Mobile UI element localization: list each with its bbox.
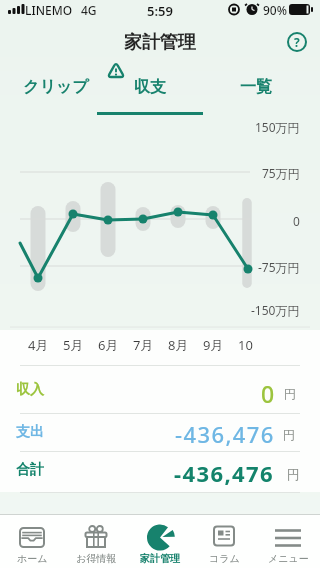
staticText: 0	[293, 213, 300, 228]
staticText: 4月	[28, 336, 49, 353]
staticText: ホーム	[17, 552, 48, 565]
staticText: メニュー	[268, 552, 309, 565]
staticText: 75万円	[262, 165, 300, 180]
staticText: LINEMO	[25, 2, 73, 18]
staticText: 8月	[168, 336, 189, 353]
button[interactable]: お得情報	[64, 515, 128, 568]
staticText: 家計管理	[124, 31, 196, 53]
staticText: 5:59	[147, 2, 173, 18]
staticText: 5月	[63, 336, 84, 353]
staticText: 家計管理	[140, 552, 180, 565]
staticText: 90%	[263, 2, 287, 18]
button[interactable]	[0, 366, 320, 413]
staticText: -150万円	[251, 302, 300, 317]
button[interactable]	[0, 452, 320, 492]
staticText: 支出	[16, 423, 44, 441]
button[interactable]: ホーム	[0, 515, 64, 568]
staticText: 0	[261, 378, 275, 406]
staticText: 合計	[16, 461, 44, 479]
staticText: 4G	[81, 2, 97, 18]
staticText: クリップ	[23, 77, 89, 97]
staticText: -75万円	[258, 259, 300, 274]
staticText: -436,476	[174, 458, 275, 486]
button[interactable]: ?	[286, 31, 308, 53]
staticText: コラム	[209, 552, 240, 565]
staticText: 円	[284, 386, 296, 401]
staticText: 9月	[203, 336, 224, 353]
button[interactable]: クリップ	[21, 76, 91, 98]
staticText: ?	[294, 34, 300, 50]
button[interactable]: 収支	[125, 76, 175, 98]
staticText: 一覧	[240, 77, 272, 97]
staticText: 7月	[133, 336, 154, 353]
button[interactable]: 一覧	[231, 76, 281, 98]
staticText: 10	[238, 336, 253, 353]
staticText: 150万円	[255, 119, 300, 134]
staticText: 円	[287, 466, 300, 482]
staticText: お得情報	[76, 552, 117, 565]
button[interactable]	[0, 414, 320, 451]
staticText: 収入	[16, 381, 44, 399]
staticText: 円	[283, 427, 295, 442]
button[interactable]: コラム	[192, 515, 256, 568]
button[interactable]: メニュー	[256, 515, 320, 568]
staticText: 収支	[134, 77, 166, 97]
button[interactable]: 家計管理	[128, 515, 192, 568]
staticText: 6月	[98, 336, 119, 353]
staticText: -436,476	[175, 419, 275, 447]
